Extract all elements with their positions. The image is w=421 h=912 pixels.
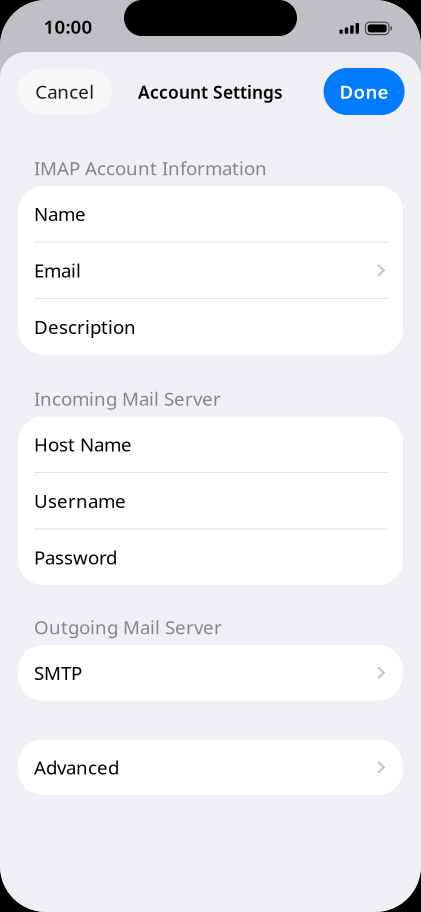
staticText: Incoming Mail Server <box>34 386 221 411</box>
button[interactable]: Description <box>18 299 403 354</box>
staticText: Advanced <box>34 755 119 780</box>
button[interactable]: Email <box>18 242 403 298</box>
staticText: Host Name <box>34 432 132 457</box>
button[interactable]: Password <box>18 529 403 585</box>
staticText: Cancel <box>35 79 94 104</box>
staticText: Account Settings <box>138 80 283 103</box>
staticText: Name <box>34 201 86 226</box>
button[interactable]: Host Name <box>18 416 403 472</box>
button[interactable]: Done <box>324 68 405 115</box>
staticText: IMAP Account Information <box>34 156 267 180</box>
staticText: Description <box>34 314 136 339</box>
staticText: 10:00 <box>43 14 92 39</box>
button[interactable]: SMTP <box>18 645 403 700</box>
staticText: Done <box>340 79 389 104</box>
button[interactable]: Name <box>18 186 403 241</box>
staticText: Email <box>34 258 81 283</box>
staticText: Outgoing Mail Server <box>34 615 222 639</box>
staticText: Username <box>34 488 126 513</box>
button[interactable]: Username <box>18 473 403 528</box>
button[interactable]: Advanced <box>18 739 403 795</box>
staticText: SMTP <box>34 660 82 685</box>
staticText: Password <box>34 545 117 570</box>
button[interactable]: Cancel <box>18 68 112 114</box>
